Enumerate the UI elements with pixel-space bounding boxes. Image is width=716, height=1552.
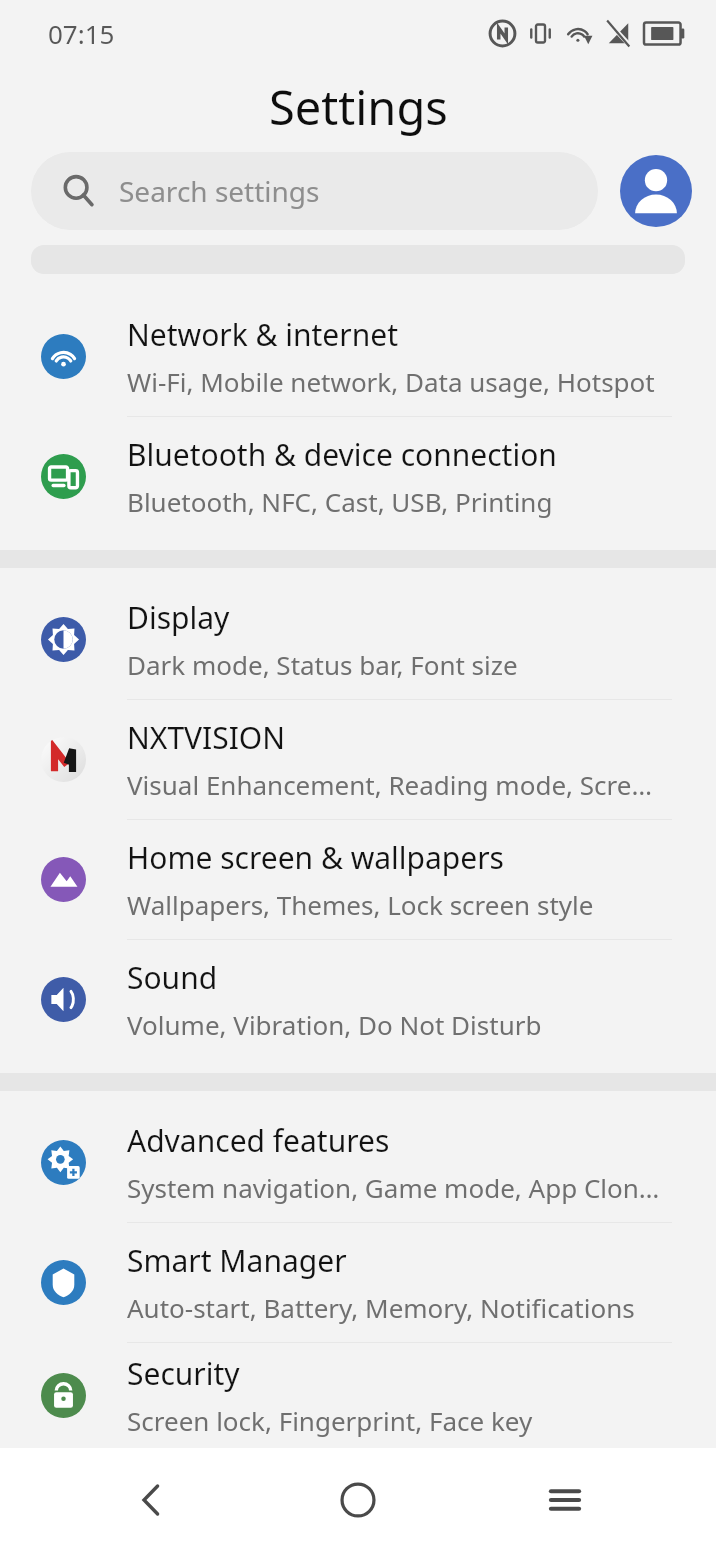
staticText: Network & internet [127,314,398,355]
staticText: Advanced features [127,1120,390,1161]
staticText: Home screen & wallpapers [127,837,504,878]
button[interactable]: Search settings [31,152,598,230]
staticText: Screen lock, Fingerprint, Face key [127,1403,533,1438]
button[interactable]: NXTVISION [0,700,716,819]
button[interactable]: Network & internet [0,297,716,416]
button[interactable]: Account [620,155,692,227]
staticText: Settings [269,75,448,139]
staticText: System navigation, Game mode, App Clon… [127,1170,660,1205]
staticText: Display [127,597,230,638]
staticText: 07:15 [48,16,115,51]
staticText: Wallpapers, Themes, Lock screen style [127,887,594,922]
button[interactable]: Bluetooth & device connection [0,417,716,536]
staticText: Bluetooth, NFC, Cast, USB, Printing [127,484,553,519]
button[interactable]: Home [303,1448,413,1552]
staticText: Volume, Vibration, Do Not Disturb [127,1007,542,1042]
staticText: Visual Enhancement, Reading mode, Scre… [127,767,652,802]
staticText: Search settings [119,172,320,210]
button[interactable]: Security [0,1343,716,1448]
button[interactable]: Recent apps [510,1448,620,1552]
staticText: Bluetooth & device connection [127,434,557,475]
staticText: Smart Manager [127,1240,347,1281]
button[interactable]: Smart Manager [0,1223,716,1342]
staticText: Dark mode, Status bar, Font size [127,647,518,682]
button[interactable]: Display [0,580,716,699]
button[interactable]: Home screen & wallpapers [0,820,716,939]
staticText: Auto-start, Battery, Memory, Notificatio… [127,1290,635,1325]
button[interactable]: Sound [0,940,716,1059]
button[interactable]: Advanced features [0,1103,716,1222]
staticText: Sound [127,957,218,998]
button[interactable]: Back [97,1448,207,1552]
staticText: Security [127,1353,240,1394]
staticText: Wi-Fi, Mobile network, Data usage, Hotsp… [127,364,655,399]
staticText: NXTVISION [127,717,286,758]
